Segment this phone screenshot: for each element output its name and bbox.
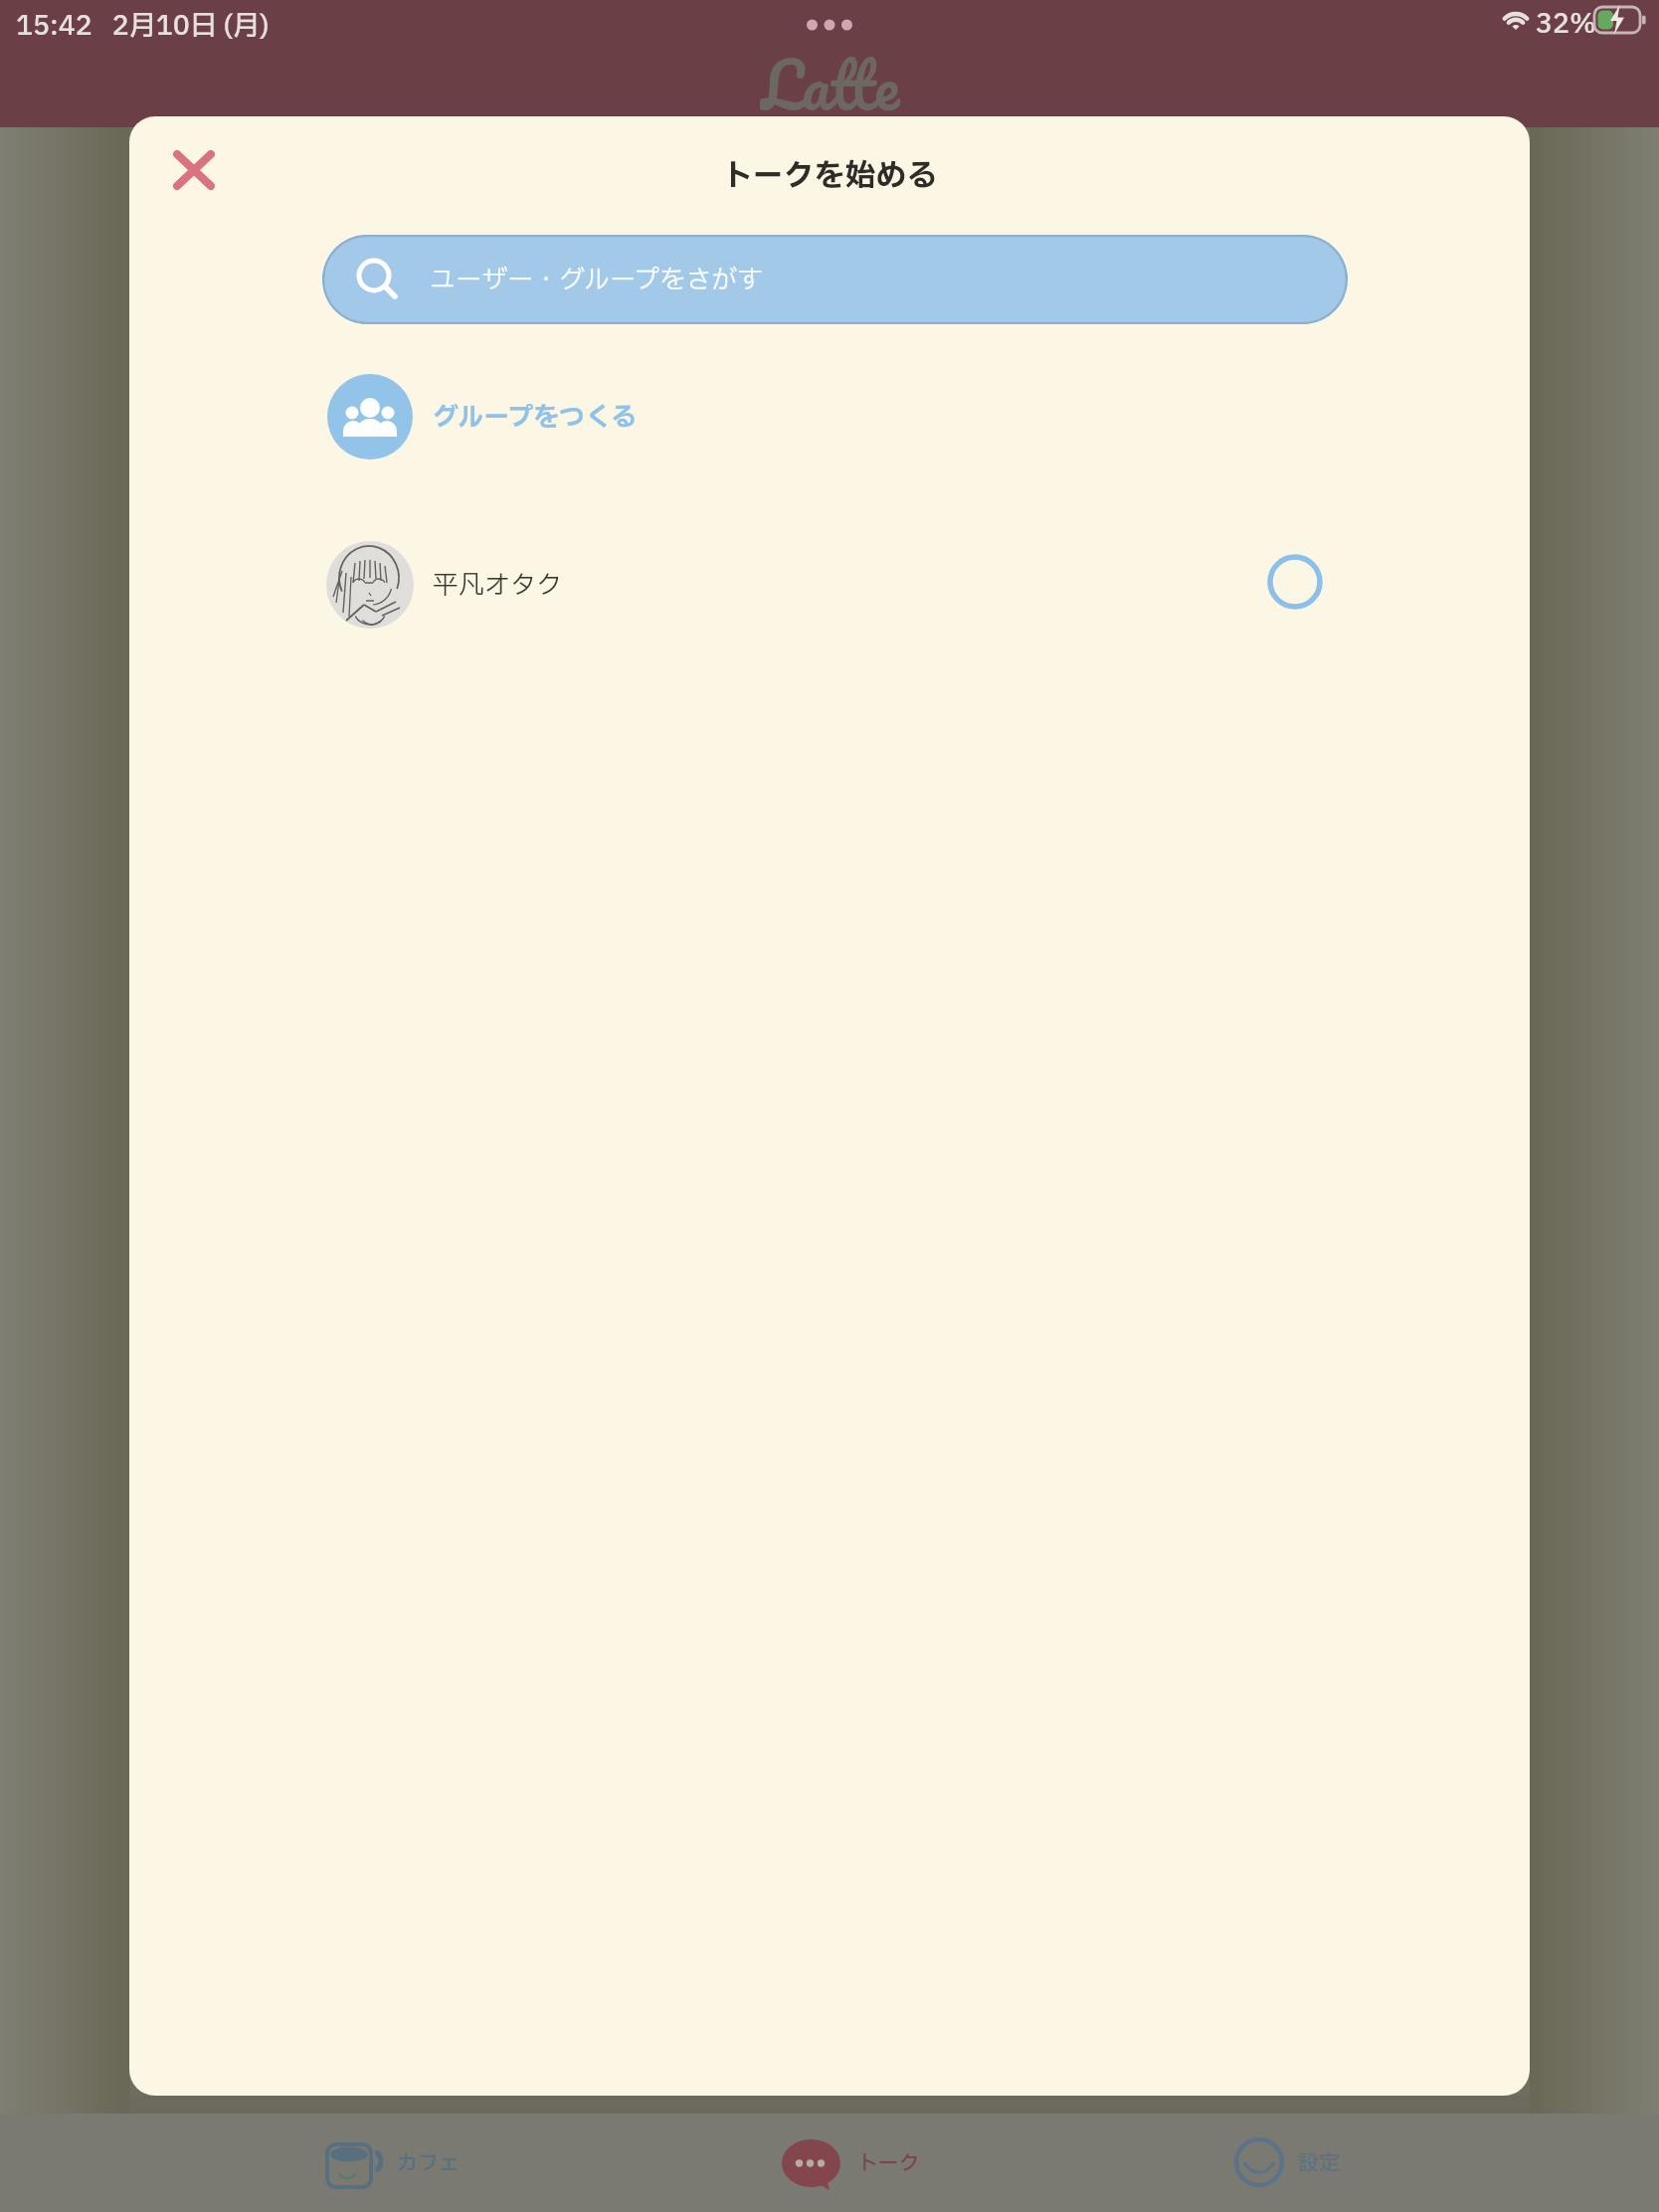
staticText: Latte — [760, 30, 900, 123]
button[interactable]: 設定 — [1221, 2121, 1371, 2205]
button[interactable]: カフェ — [303, 2121, 477, 2205]
staticText: 32% — [1536, 4, 1596, 40]
button[interactable]: グループをつくる — [322, 369, 919, 464]
staticText: 設定 — [1298, 2148, 1340, 2179]
staticText: トーク — [857, 2148, 920, 2179]
staticText: カフェ — [397, 2148, 460, 2179]
button[interactable] — [1263, 550, 1327, 614]
button[interactable]: トーク — [766, 2121, 925, 2205]
staticText: トークを始める — [722, 153, 938, 189]
staticText: 15:42 2月10日 (月) — [16, 6, 270, 42]
staticText: グループをつくる — [433, 398, 638, 437]
staticText: 平凡オタク — [433, 566, 563, 605]
button[interactable]: ユーザー・グループをさがす — [322, 235, 1348, 324]
staticText: ユーザー・グループをさがす — [430, 261, 764, 299]
button[interactable] — [159, 135, 229, 205]
button[interactable]: 平凡オタク — [322, 537, 1377, 633]
